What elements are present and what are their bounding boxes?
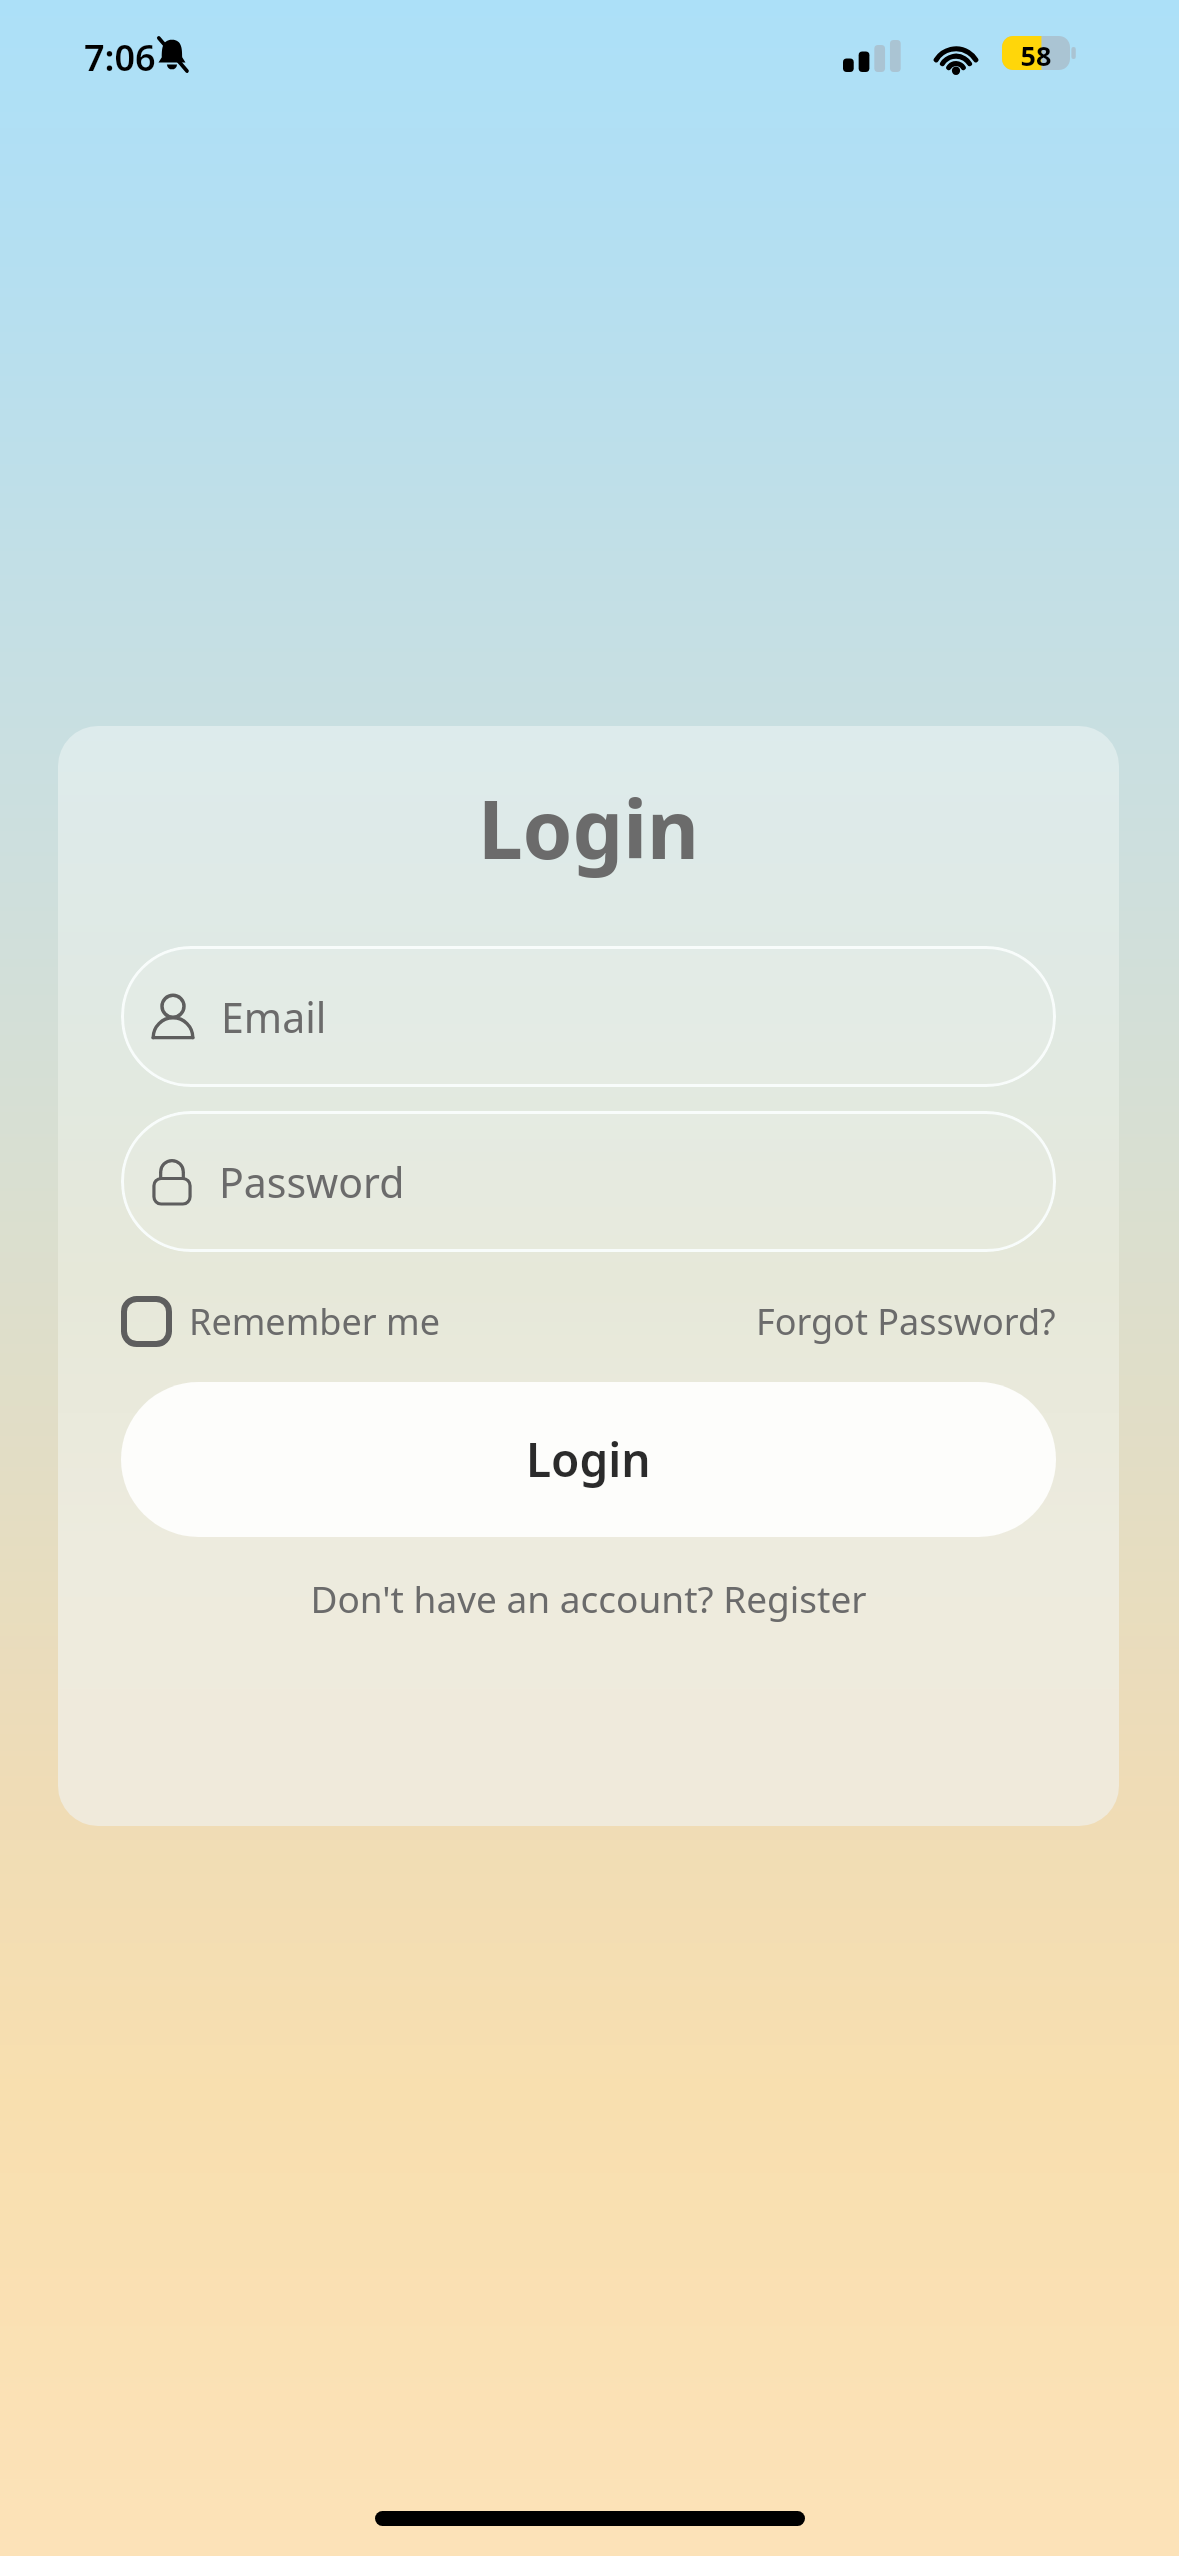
staticText: Login [526, 1428, 651, 1491]
other: Email [151, 993, 195, 1041]
button[interactable]: Login [121, 1382, 1056, 1537]
staticText: Don't have an account? Register [310, 1573, 867, 1623]
button[interactable]: Email [121, 946, 1056, 1087]
staticText: Forgot Password? [756, 1297, 1056, 1346]
other: Password [151, 1157, 193, 1207]
staticText: Remember me [189, 1297, 440, 1346]
staticText: 7:06 [84, 33, 156, 82]
button[interactable]: Don't have an account? Register [121, 1573, 1056, 1623]
staticText: Login [121, 773, 1056, 882]
button[interactable]: Remember me [121, 1296, 440, 1347]
staticText: Email [221, 989, 327, 1045]
button[interactable]: Password [121, 1111, 1056, 1252]
staticText: 58 [1002, 37, 1070, 70]
staticText: Password [219, 1154, 405, 1210]
button[interactable]: Forgot Password? [756, 1297, 1056, 1346]
